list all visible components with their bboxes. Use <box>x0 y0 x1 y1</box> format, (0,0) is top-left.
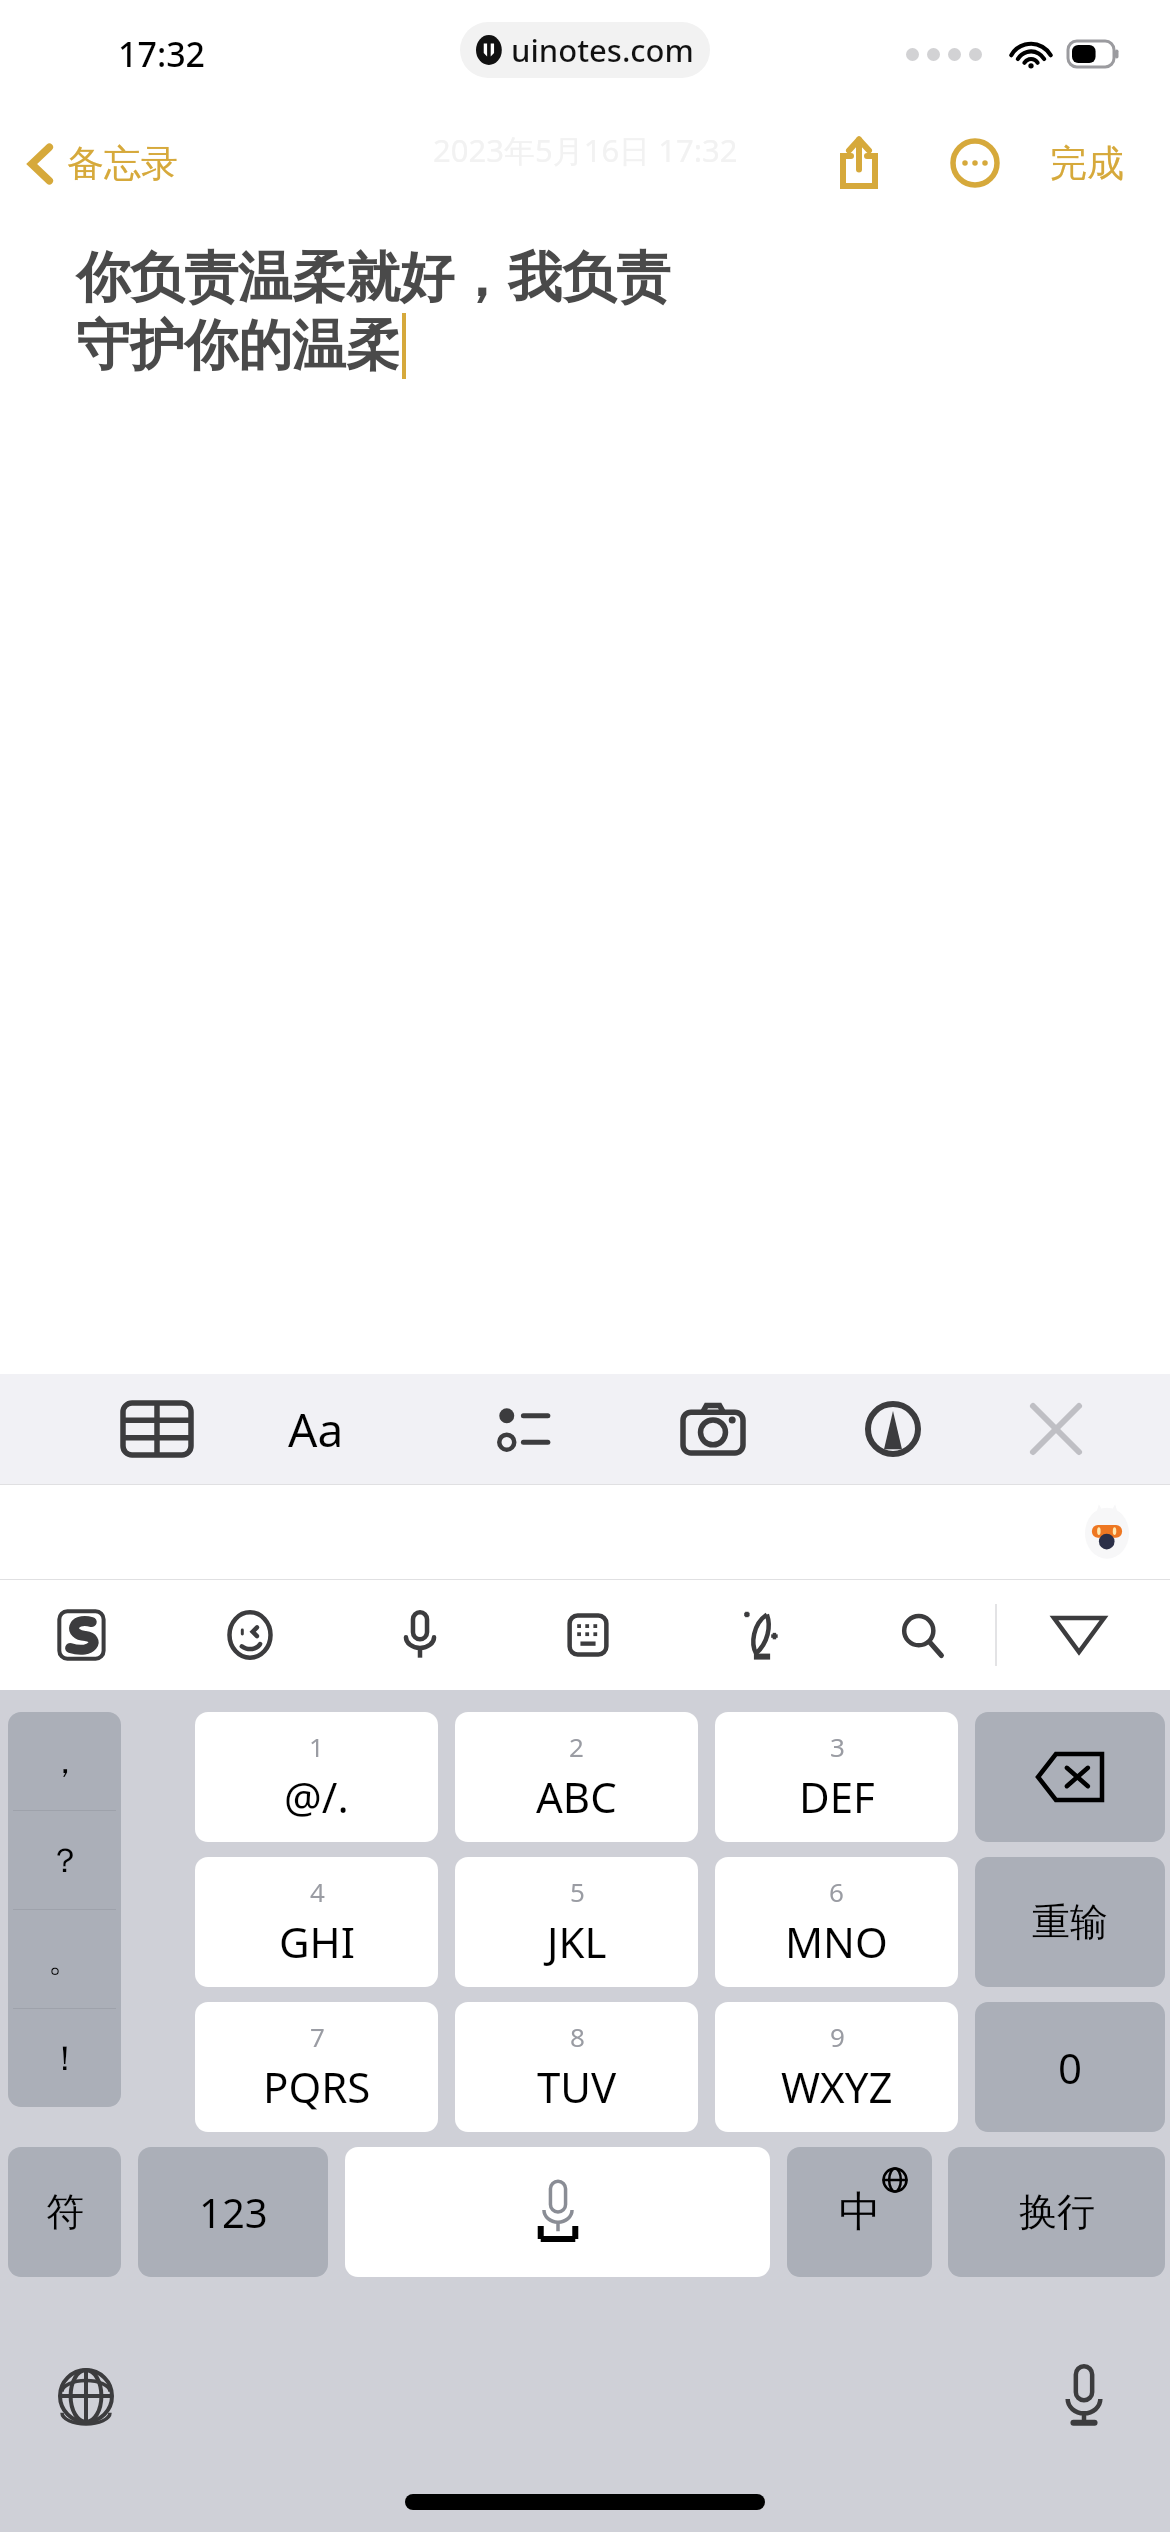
button[interactable]: 2 <box>455 1712 698 1842</box>
button[interactable]: Voice input <box>380 1595 460 1675</box>
button[interactable]: 5 <box>455 1857 698 1987</box>
button[interactable]: Delete <box>975 1712 1165 1842</box>
staticText: 2 <box>569 1729 584 1764</box>
button[interactable]: 123 <box>138 2147 328 2277</box>
staticText: 17:32 <box>118 31 206 77</box>
button[interactable]: 6 <box>715 1857 958 1987</box>
button[interactable]: Hide keyboard <box>1040 1596 1118 1674</box>
staticText: ！ <box>48 2037 82 2080</box>
staticText: WXYZ <box>781 2058 893 2115</box>
button[interactable]: Camera <box>674 1390 752 1468</box>
staticText: TUV <box>537 2058 617 2115</box>
staticText: 守护你的温柔 <box>76 312 400 380</box>
button[interactable]: Markup <box>854 1390 932 1468</box>
staticText: 你负责温柔就好，我负责 <box>76 244 670 312</box>
button[interactable]: ， <box>8 1712 121 2107</box>
button[interactable]: 重输 <box>975 1857 1165 1987</box>
staticText: 符 <box>46 2188 84 2236</box>
staticText: 7 <box>310 2019 325 2054</box>
button[interactable]: 符 <box>8 2147 121 2277</box>
button[interactable]: Sogou <box>42 1595 122 1675</box>
staticText: 2023年5月16日 17:32 <box>433 129 738 171</box>
staticText: 3 <box>830 1729 845 1764</box>
button[interactable]: 7 <box>195 2002 438 2132</box>
button[interactable]: 4 <box>195 1857 438 1987</box>
button[interactable]: Change language <box>42 2352 130 2440</box>
staticText: 完成 <box>1050 140 1124 187</box>
button[interactable]: Table <box>118 1390 196 1468</box>
staticText: 备忘录 <box>67 140 178 187</box>
staticText: 6 <box>829 1874 844 1909</box>
staticText: 换行 <box>1019 2188 1095 2236</box>
button[interactable]: 换行 <box>948 2147 1165 2277</box>
button[interactable]: Space / voice <box>345 2147 770 2277</box>
button[interactable]: 3 <box>715 1712 958 1842</box>
staticText: @/. <box>284 1768 349 1825</box>
staticText: uinotes.com <box>511 29 694 71</box>
button[interactable]: 9 <box>715 2002 958 2132</box>
staticText: PQRS <box>263 2058 371 2115</box>
button[interactable]: 中 <box>787 2147 932 2277</box>
staticText: 4 <box>310 1874 325 1909</box>
staticText: 123 <box>199 2185 268 2239</box>
button[interactable]: Share <box>820 124 898 202</box>
button[interactable]: Checklist <box>487 1390 565 1468</box>
staticText: ？ <box>48 1839 82 1882</box>
staticText: 中 <box>839 2186 881 2239</box>
staticText: MNO <box>785 1913 888 1970</box>
button[interactable]: 0 <box>975 2002 1165 2132</box>
button[interactable]: Handwriting <box>715 1595 795 1675</box>
staticText: Aa <box>288 1398 344 1461</box>
button[interactable]: 完成 <box>1044 130 1130 197</box>
button[interactable]: More <box>936 124 1014 202</box>
staticText: 0 <box>1058 2039 1083 2096</box>
button[interactable]: 1 <box>195 1712 438 1842</box>
button[interactable]: Search <box>882 1595 962 1675</box>
button[interactable]: Dictation <box>1040 2352 1128 2440</box>
staticText: 5 <box>570 1874 585 1909</box>
button[interactable]: Emoji <box>210 1595 290 1675</box>
button[interactable]: 8 <box>455 2002 698 2132</box>
staticText: 。 <box>48 1938 82 1981</box>
staticText: 8 <box>570 2019 585 2054</box>
staticText: DEF <box>799 1768 875 1825</box>
button[interactable]: Close <box>1017 1390 1095 1468</box>
staticText: JKL <box>547 1913 607 1970</box>
staticText: 9 <box>830 2019 845 2054</box>
staticText: 重输 <box>1032 1898 1108 1946</box>
button[interactable]: Keyboard layout <box>548 1595 628 1675</box>
staticText: GHI <box>279 1913 355 1970</box>
staticText: 1 <box>309 1729 324 1764</box>
button[interactable]: 备忘录 <box>24 132 182 195</box>
staticText: ABC <box>536 1768 617 1825</box>
staticText: ， <box>48 1740 82 1783</box>
button[interactable]: Input method avatar <box>1076 1501 1138 1563</box>
